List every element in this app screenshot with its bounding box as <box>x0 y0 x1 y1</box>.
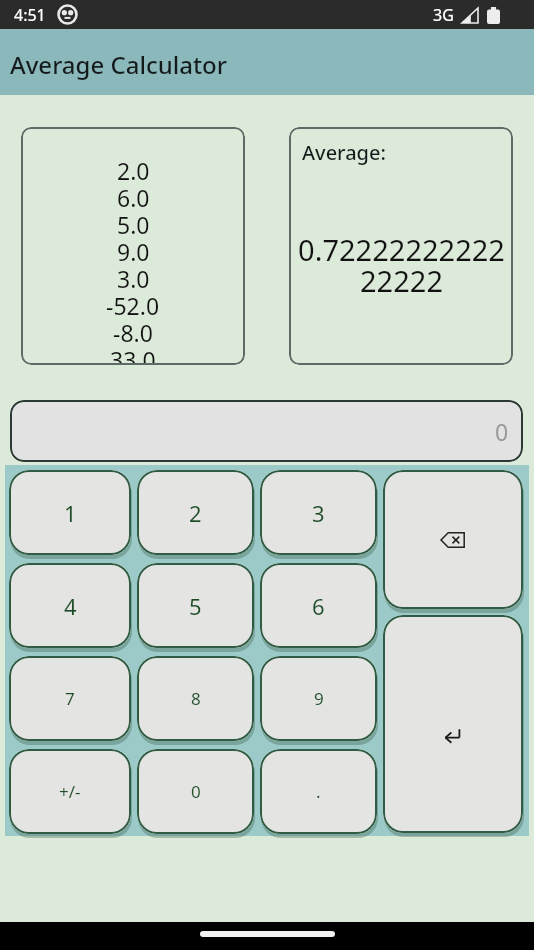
staticText: 2.0 <box>117 155 150 182</box>
button[interactable] <box>383 470 523 609</box>
staticText: 3.0 <box>117 263 150 290</box>
staticText: 0 <box>191 780 201 803</box>
button[interactable]: +/- <box>9 749 131 834</box>
button[interactable]: . <box>260 749 377 834</box>
button[interactable]: 2 <box>137 470 254 555</box>
staticText: 6 <box>312 591 325 621</box>
button[interactable]: 7 <box>9 656 131 741</box>
staticText: 33.0 <box>110 344 156 365</box>
staticText: . <box>316 780 321 803</box>
staticText: 9.0 <box>117 236 150 263</box>
button[interactable] <box>200 931 335 937</box>
staticText: 8 <box>191 687 201 710</box>
staticText: 5.0 <box>117 209 150 236</box>
staticText: 4:51 <box>14 4 46 26</box>
staticText: Average: <box>302 139 386 166</box>
button[interactable]: 1 <box>9 470 131 555</box>
staticText: 3G <box>433 4 454 26</box>
button[interactable]: 0 <box>137 749 254 834</box>
staticText: 2 <box>189 498 202 528</box>
button[interactable]: 3 <box>260 470 377 555</box>
button[interactable] <box>383 615 523 833</box>
staticText: 1 <box>64 498 77 528</box>
staticText: 9 <box>314 687 324 710</box>
button[interactable]: 0 <box>10 400 523 462</box>
staticText: 6.0 <box>117 182 150 209</box>
button[interactable]: 8 <box>137 656 254 741</box>
button[interactable]: 4 <box>9 563 131 648</box>
button[interactable]: 5 <box>137 563 254 648</box>
button[interactable]: 9 <box>260 656 377 741</box>
staticText: 4 <box>64 591 77 621</box>
staticText: 0.72222222222 22222 <box>298 230 505 301</box>
staticText: 5 <box>189 591 202 621</box>
button[interactable]: 6 <box>260 563 377 648</box>
staticText: 0 <box>495 416 509 447</box>
staticText: 3 <box>312 498 325 528</box>
staticText: 7 <box>65 687 75 710</box>
staticText: -52.0 <box>106 290 160 317</box>
staticText: Average Calculator <box>10 48 227 81</box>
staticText: -8.0 <box>113 317 153 344</box>
staticText: +/- <box>59 780 81 803</box>
